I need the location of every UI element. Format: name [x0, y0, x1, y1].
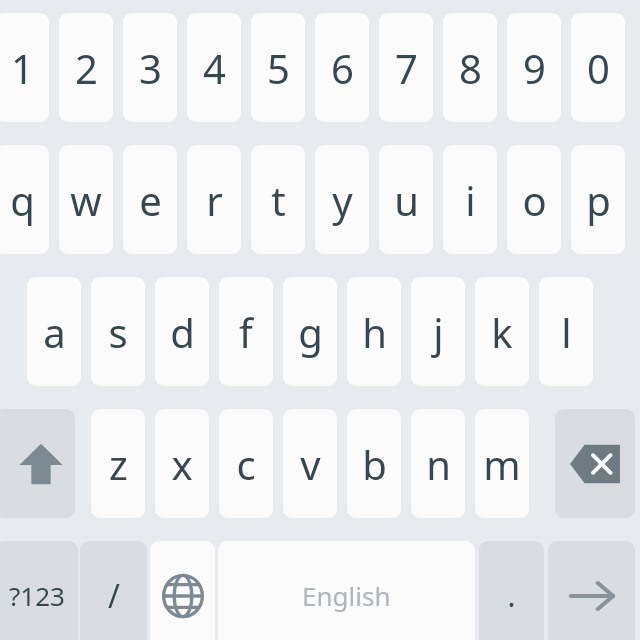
- button[interactable]: m: [475, 409, 529, 518]
- staticText: s: [108, 305, 128, 359]
- button[interactable]: t: [251, 145, 305, 254]
- staticText: o: [522, 173, 547, 227]
- button[interactable]: .: [479, 541, 544, 640]
- button[interactable]: Shift: [0, 409, 75, 518]
- button[interactable]: d: [155, 277, 209, 386]
- button[interactable]: p: [571, 145, 625, 254]
- staticText: /: [108, 574, 120, 618]
- staticText: w: [70, 173, 102, 227]
- staticText: v: [300, 437, 321, 491]
- staticText: x: [171, 437, 193, 491]
- staticText: l: [561, 305, 572, 359]
- button[interactable]: b: [347, 409, 401, 518]
- button[interactable]: 2: [59, 13, 113, 122]
- button[interactable]: j: [411, 277, 465, 386]
- button[interactable]: e: [123, 145, 177, 254]
- staticText: i: [465, 173, 476, 227]
- staticText: 9: [523, 41, 546, 95]
- staticText: 7: [395, 41, 418, 95]
- button[interactable]: h: [347, 277, 401, 386]
- button[interactable]: 4: [187, 13, 241, 122]
- button[interactable]: q: [0, 145, 49, 254]
- staticText: ?123: [9, 578, 65, 613]
- button[interactable]: Change language: [150, 541, 215, 640]
- button[interactable]: x: [155, 409, 209, 518]
- staticText: English: [302, 578, 391, 613]
- button[interactable]: a: [27, 277, 81, 386]
- staticText: f: [239, 305, 253, 359]
- staticText: y: [332, 173, 353, 227]
- staticText: r: [206, 173, 223, 227]
- button[interactable]: Backspace: [555, 409, 635, 518]
- staticText: 8: [459, 41, 482, 95]
- button[interactable]: i: [443, 145, 497, 254]
- button[interactable]: English: [218, 541, 475, 640]
- button[interactable]: z: [91, 409, 145, 518]
- button[interactable]: 5: [251, 13, 305, 122]
- staticText: 0: [587, 41, 610, 95]
- button[interactable]: 0: [571, 13, 625, 122]
- staticText: u: [394, 173, 419, 227]
- button[interactable]: o: [507, 145, 561, 254]
- staticText: g: [298, 305, 323, 359]
- staticText: h: [362, 305, 387, 359]
- button[interactable]: g: [283, 277, 337, 386]
- staticText: j: [433, 305, 444, 359]
- staticText: 2: [75, 41, 98, 95]
- button[interactable]: 3: [123, 13, 177, 122]
- staticText: 3: [139, 41, 162, 95]
- button[interactable]: 7: [379, 13, 433, 122]
- button[interactable]: 8: [443, 13, 497, 122]
- staticText: a: [43, 305, 66, 359]
- button[interactable]: l: [539, 277, 593, 386]
- button[interactable]: s: [91, 277, 145, 386]
- button[interactable]: 1: [0, 13, 49, 122]
- button[interactable]: 9: [507, 13, 561, 122]
- staticText: .: [507, 575, 516, 616]
- staticText: t: [271, 173, 286, 227]
- button[interactable]: ?123: [0, 541, 78, 640]
- staticText: 4: [203, 41, 226, 95]
- staticText: p: [586, 173, 611, 227]
- staticText: d: [170, 305, 195, 359]
- button[interactable]: w: [59, 145, 113, 254]
- staticText: 6: [331, 41, 354, 95]
- staticText: q: [10, 173, 35, 227]
- staticText: c: [236, 437, 256, 491]
- staticText: 5: [267, 41, 290, 95]
- button[interactable]: f: [219, 277, 273, 386]
- button[interactable]: /: [80, 541, 147, 640]
- button[interactable]: Enter: [548, 541, 635, 640]
- button[interactable]: n: [411, 409, 465, 518]
- button[interactable]: k: [475, 277, 529, 386]
- button[interactable]: u: [379, 145, 433, 254]
- button[interactable]: r: [187, 145, 241, 254]
- button[interactable]: c: [219, 409, 273, 518]
- staticText: n: [426, 437, 451, 491]
- staticText: e: [139, 173, 162, 227]
- staticText: 1: [11, 41, 34, 95]
- button[interactable]: v: [283, 409, 337, 518]
- staticText: k: [491, 305, 513, 359]
- staticText: m: [483, 437, 521, 491]
- button[interactable]: y: [315, 145, 369, 254]
- staticText: z: [109, 437, 128, 491]
- button[interactable]: 6: [315, 13, 369, 122]
- staticText: b: [362, 437, 387, 491]
